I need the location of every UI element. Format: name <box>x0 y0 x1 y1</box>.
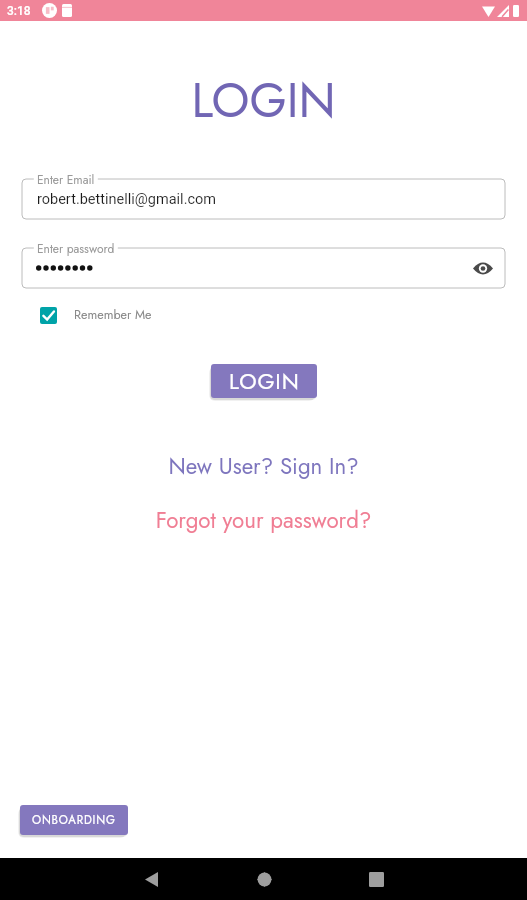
staticText: ONBOARDING <box>32 812 116 829</box>
staticText: Enter Email <box>37 171 95 188</box>
button[interactable]: Forgot your password? <box>0 504 527 536</box>
staticText: 3:18 <box>7 4 31 18</box>
button[interactable]: Recents <box>358 861 394 897</box>
button[interactable]: Back <box>133 861 169 897</box>
button[interactable]: Home <box>246 861 282 897</box>
button[interactable]: New User? Sign In? <box>0 450 527 482</box>
button[interactable]: Enter Email <box>22 179 505 219</box>
staticText: Enter password <box>37 240 115 257</box>
staticText: LOGIN <box>0 66 527 135</box>
button[interactable]: ONBOARDING <box>20 805 128 835</box>
staticText: LOGIN <box>229 365 300 397</box>
button[interactable]: Remember Me <box>40 306 152 324</box>
button[interactable]: Enter password <box>22 248 505 288</box>
staticText: Remember Me <box>74 306 152 324</box>
button[interactable]: Show password <box>470 255 496 281</box>
button[interactable]: LOGIN <box>211 364 317 398</box>
staticText: robert.bettinelli@gmail.com <box>37 191 217 208</box>
